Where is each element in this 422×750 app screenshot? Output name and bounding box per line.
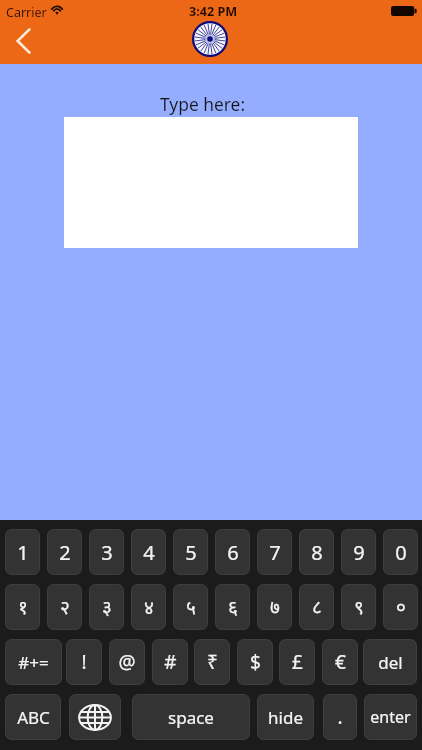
staticText: del [378,651,403,674]
button[interactable]: ६ [215,584,250,630]
staticText: # [164,649,177,675]
staticText: 5 [185,539,197,566]
staticText: 0 [395,539,407,566]
staticText: enter [370,706,411,728]
button[interactable]: 1 [5,529,40,575]
button[interactable]: 7 [257,529,292,575]
button[interactable]: ८ [299,584,334,630]
button[interactable]: hide [257,694,314,740]
button[interactable]: ० [383,584,418,630]
staticText: $ [250,649,261,675]
button[interactable]: # [152,639,188,685]
button[interactable]: ७ [257,584,292,630]
button[interactable]: Back [4,22,44,60]
staticText: ! [81,649,87,675]
staticText: 6 [227,539,239,566]
button[interactable]: € [322,639,358,685]
staticText: ६ [228,594,238,620]
button[interactable]: $ [237,639,273,685]
button[interactable]: 8 [299,529,334,575]
staticText: Carrier [6,4,47,21]
staticText: 7 [269,539,281,566]
staticText: € [335,649,346,675]
button[interactable]: 4 [131,529,166,575]
staticText: ABC [17,706,50,729]
button[interactable]: ! [66,639,102,685]
staticText: ० [396,594,406,620]
staticText: @ [118,649,136,675]
staticText: hide [268,706,303,729]
staticText: ५ [186,594,196,620]
button[interactable]: ५ [173,584,208,630]
button[interactable]: १ [5,584,40,630]
button[interactable]: Change keyboard [69,694,121,740]
staticText: ३ [102,594,112,620]
staticText: 2 [59,539,71,566]
staticText: 9 [353,539,365,566]
staticText: ४ [144,594,154,620]
staticText: £ [292,649,303,675]
button[interactable]: . [323,694,357,740]
staticText: ८ [312,594,322,620]
staticText: 1 [17,539,29,566]
button[interactable]: 5 [173,529,208,575]
button[interactable]: 9 [341,529,376,575]
staticText: ९ [354,594,364,620]
button[interactable]: space [132,694,250,740]
button[interactable]: £ [279,639,315,685]
staticText: . [337,704,343,730]
staticText: 3:42 PM [189,3,238,20]
staticText: space [168,706,214,729]
staticText: 3 [101,539,113,566]
button[interactable]: 3 [89,529,124,575]
button[interactable]: 0 [383,529,418,575]
button[interactable]: २ [47,584,82,630]
staticText: ₹ [207,649,218,675]
staticText: #+= [18,651,49,674]
button[interactable]: 2 [47,529,82,575]
button[interactable]: del [363,639,417,685]
staticText: ७ [270,594,280,620]
button[interactable]: @ [109,639,145,685]
button[interactable]: ३ [89,584,124,630]
button[interactable]: ₹ [194,639,230,685]
button[interactable]: enter [364,694,417,740]
staticText: 8 [311,539,323,566]
staticText: २ [60,594,70,620]
button[interactable]: #+= [5,639,62,685]
button[interactable]: 6 [215,529,250,575]
staticText: १ [18,594,28,620]
staticText: Type here: [160,92,246,116]
button[interactable]: ABC [5,694,61,740]
button[interactable]: ९ [341,584,376,630]
staticText: 4 [143,539,155,566]
button[interactable]: ४ [131,584,166,630]
